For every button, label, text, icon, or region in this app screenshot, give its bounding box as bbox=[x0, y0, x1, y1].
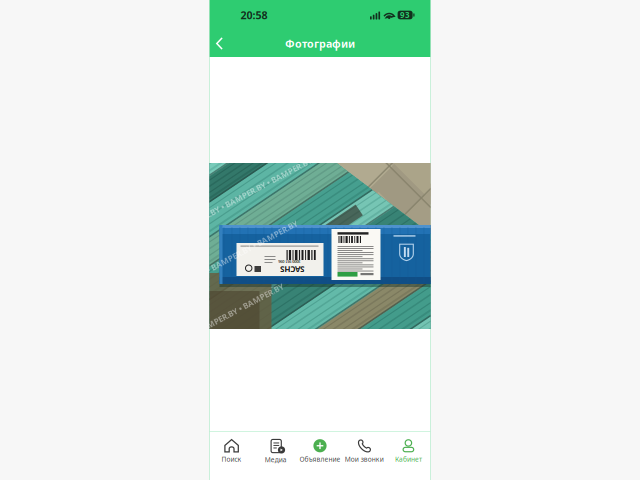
staticText: BAMPER.BY • BAMPER.BY • BAMPER.BY • BAMP… bbox=[23, 310, 224, 320]
button[interactable]: Поиск bbox=[209, 437, 254, 466]
staticText: Фотографии bbox=[285, 36, 355, 51]
staticText: Медиа bbox=[265, 455, 287, 464]
staticText: BAMPER.BY • BAMPER.BY • BAMPER.BY • BAMP… bbox=[107, 212, 308, 222]
staticText: Мои звонки bbox=[345, 455, 384, 464]
staticText: SACHS bbox=[280, 264, 304, 275]
staticText: Объявление bbox=[299, 455, 340, 464]
button[interactable]: Мои звонки bbox=[342, 437, 386, 466]
button[interactable]: Медиа bbox=[254, 436, 298, 466]
button[interactable]: Back bbox=[209, 33, 229, 54]
staticText: BAMPER.BY • BAMPER.BY • BAMPER.BY • BAMP… bbox=[149, 163, 350, 173]
button[interactable]: Кабинет bbox=[386, 437, 430, 466]
staticText: 93 bbox=[400, 10, 410, 20]
staticText: 20:58 bbox=[240, 8, 267, 22]
staticText: Поиск bbox=[222, 455, 242, 464]
button[interactable]: Объявление bbox=[298, 437, 342, 466]
staticText: 3000 951 096 bbox=[278, 259, 300, 264]
staticText: BAMPER.BY • BAMPER.BY • BAMPER.BY • BAMP… bbox=[65, 261, 266, 271]
staticText: Кабинет bbox=[395, 455, 422, 464]
